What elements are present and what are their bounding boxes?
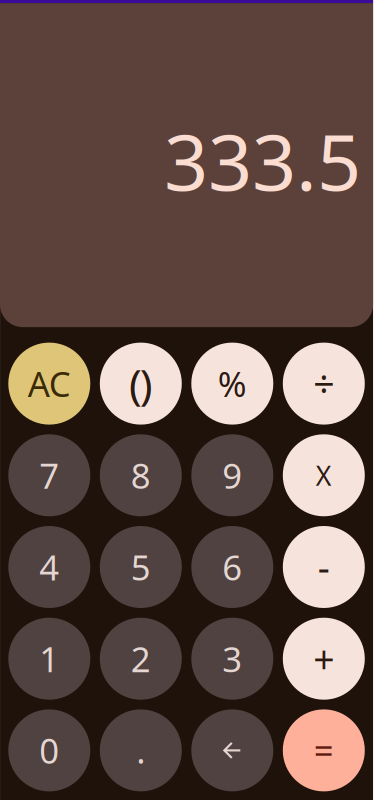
staticText: -	[318, 542, 330, 592]
staticText: AC	[28, 361, 71, 407]
button[interactable]: Backspace	[191, 709, 273, 791]
button[interactable]: ()	[100, 343, 182, 425]
staticText: =	[314, 727, 334, 773]
button[interactable]: 0	[8, 709, 90, 791]
button[interactable]: 6	[191, 526, 273, 608]
button[interactable]: 3	[191, 618, 273, 700]
staticText: %	[218, 361, 247, 407]
staticText: 3	[222, 636, 242, 682]
staticText: X	[316, 458, 332, 493]
staticText: 2	[131, 636, 151, 682]
button[interactable]: 4	[8, 526, 90, 608]
button[interactable]: 5	[100, 526, 182, 608]
staticText: 4	[39, 544, 59, 590]
staticText: 6	[222, 544, 242, 590]
staticText: ÷	[313, 359, 334, 408]
button[interactable]: +	[283, 618, 365, 700]
button[interactable]: -	[283, 526, 365, 608]
staticText: +	[313, 634, 334, 683]
button[interactable]: AC	[8, 343, 90, 425]
button[interactable]: ÷	[283, 343, 365, 425]
button[interactable]: X	[283, 434, 365, 516]
staticText: .	[136, 727, 145, 773]
button[interactable]: .	[100, 709, 182, 791]
staticText: ()	[129, 355, 153, 412]
button[interactable]: %	[191, 343, 273, 425]
button[interactable]: 7	[8, 434, 90, 516]
staticText: 9	[222, 452, 242, 498]
button[interactable]: 8	[100, 434, 182, 516]
staticText: 8	[131, 452, 151, 498]
button[interactable]: 2	[100, 618, 182, 700]
staticText: 5	[131, 544, 151, 590]
button[interactable]: 9	[191, 434, 273, 516]
button[interactable]: =	[283, 709, 365, 791]
staticText: 0	[39, 727, 59, 773]
staticText: 7	[39, 452, 59, 498]
button[interactable]: 1	[8, 618, 90, 700]
staticText: 333.5	[164, 109, 361, 212]
staticText: 1	[39, 636, 59, 682]
